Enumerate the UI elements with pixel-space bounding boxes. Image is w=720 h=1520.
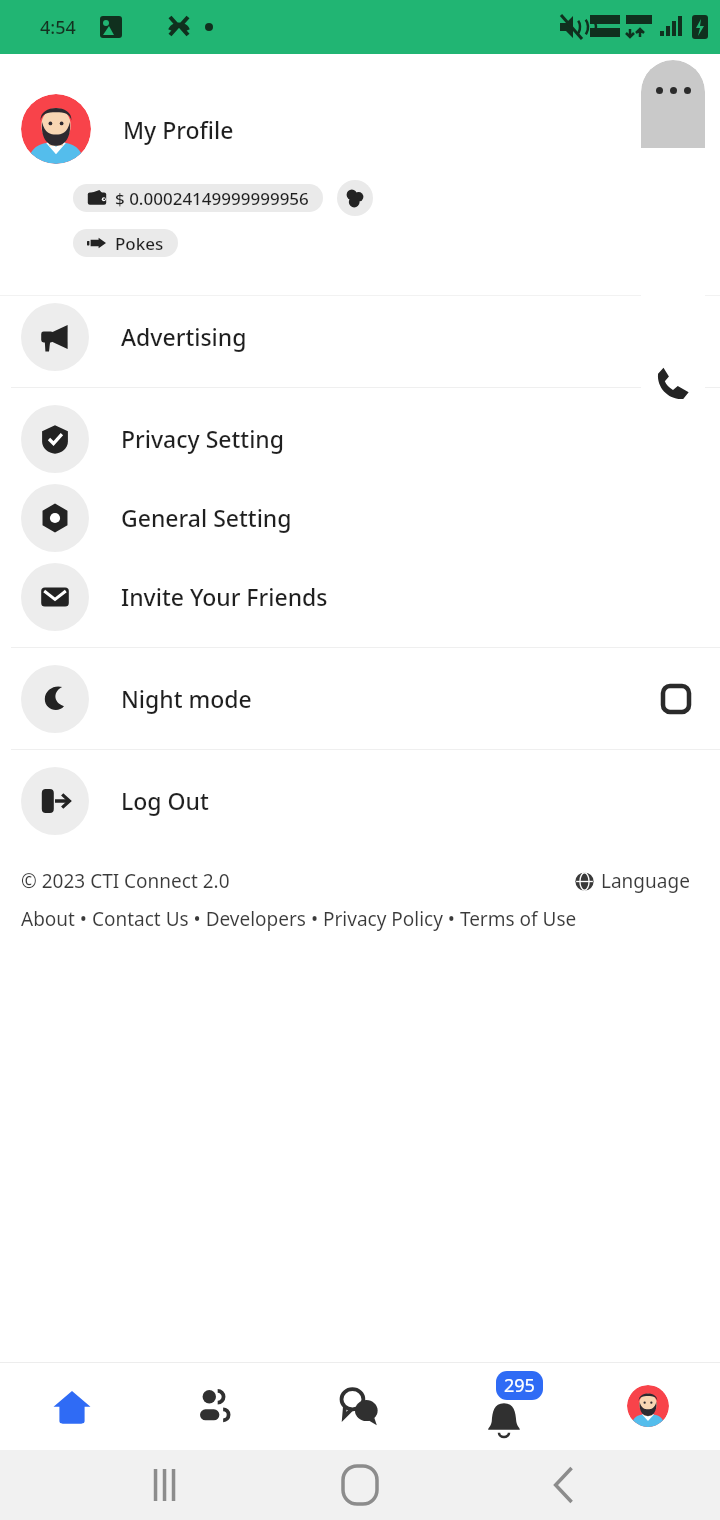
button[interactable]: About • Contact Us • Developers • Privac… xyxy=(21,906,699,932)
staticText: Privacy Setting xyxy=(121,423,692,454)
button[interactable]: Log Out xyxy=(0,761,720,840)
staticText: $ 0.00024149999999956 xyxy=(115,187,309,210)
button[interactable]: General Setting xyxy=(0,478,720,557)
button[interactable] xyxy=(21,94,91,164)
button[interactable]: Notifications xyxy=(432,1362,576,1450)
button[interactable]: Pokes xyxy=(73,229,178,257)
button[interactable]: Night mode xyxy=(0,659,720,738)
staticText: 295 xyxy=(504,1373,535,1398)
staticText: My Profile xyxy=(123,114,234,145)
button[interactable]: Advertising xyxy=(0,297,720,376)
button[interactable]: Chats xyxy=(288,1362,432,1450)
staticText: Invite Your Friends xyxy=(121,581,692,612)
staticText: Night mode xyxy=(121,683,660,714)
button[interactable]: Coins xyxy=(337,180,373,216)
button[interactable]: Home xyxy=(0,1362,144,1450)
button[interactable]: Call widget xyxy=(641,60,705,423)
staticText: 4:54 xyxy=(40,15,76,40)
button[interactable]: Invite Your Friends xyxy=(0,557,720,636)
staticText: General Setting xyxy=(121,502,692,533)
button[interactable]: $ 0.00024149999999956 xyxy=(73,184,323,212)
button[interactable]: Friends xyxy=(144,1362,288,1450)
button[interactable]: Privacy Setting xyxy=(0,399,720,478)
button[interactable]: Night mode toggle xyxy=(660,683,692,715)
staticText: Pokes xyxy=(115,232,164,255)
staticText: Advertising xyxy=(121,321,692,352)
button[interactable]: Profile xyxy=(576,1362,720,1450)
button[interactable]: Language xyxy=(575,868,699,894)
staticText: Language xyxy=(601,868,690,894)
staticText: Log Out xyxy=(121,785,692,816)
staticText: © 2023 CTI Connect 2.0 xyxy=(21,868,230,894)
